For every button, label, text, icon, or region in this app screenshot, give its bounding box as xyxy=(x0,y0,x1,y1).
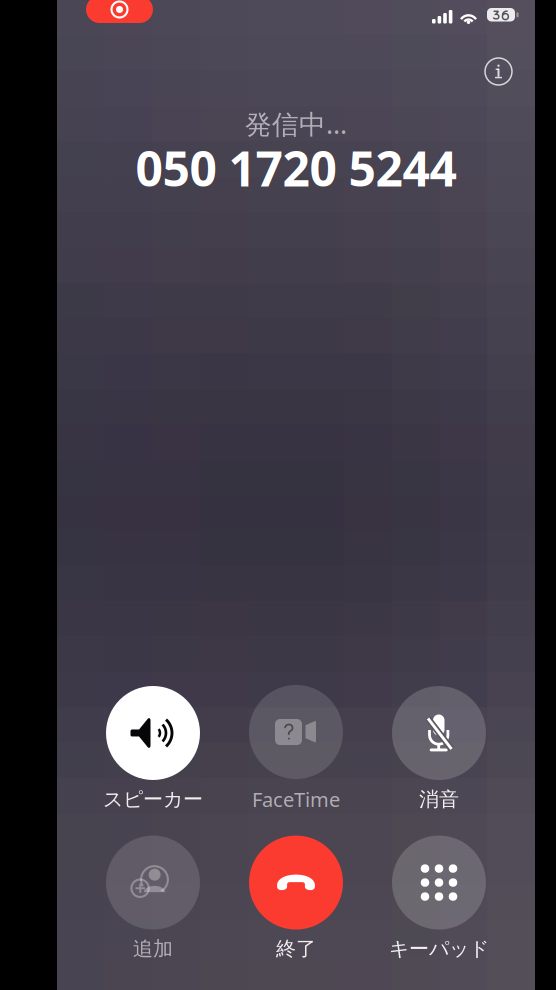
staticText: 050 1720 5244 xyxy=(135,136,456,200)
staticText: スピーカー xyxy=(103,787,203,812)
staticText: FaceTime xyxy=(252,786,340,813)
button[interactable]: Call details xyxy=(485,58,512,85)
button[interactable]: 追加 xyxy=(106,836,200,961)
button[interactable]: キーパッド xyxy=(389,836,489,961)
button[interactable]: スピーカー xyxy=(103,686,203,812)
staticText: 発信中... xyxy=(245,106,347,141)
button[interactable]: 消音 xyxy=(392,686,486,812)
staticText: 消音 xyxy=(419,787,459,812)
staticText: キーパッド xyxy=(389,937,489,961)
staticText: 終了 xyxy=(276,937,316,961)
staticText: 追加 xyxy=(133,937,173,961)
button[interactable]: 終了 xyxy=(249,836,343,961)
button[interactable]: FaceTime xyxy=(249,685,343,813)
